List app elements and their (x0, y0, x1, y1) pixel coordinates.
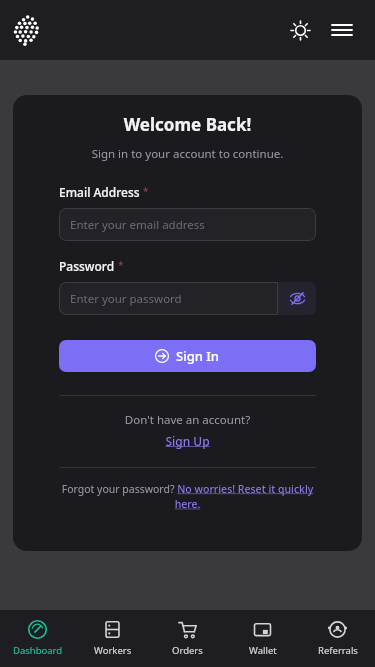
staticText: Wallet (249, 644, 277, 657)
button[interactable]: Menu (325, 13, 359, 47)
staticText: Orders (172, 644, 203, 657)
button[interactable]: Referrals (300, 610, 375, 667)
staticText: Email Address (59, 184, 140, 200)
staticText: Don't have an account? (59, 412, 316, 428)
button[interactable]: Enter your password (59, 282, 278, 315)
staticText: Dashboard (13, 644, 63, 657)
button[interactable]: Show password (278, 282, 316, 315)
button[interactable]: Orders (150, 610, 225, 667)
button[interactable]: Forgot your password? No worries! Reset … (59, 482, 316, 511)
staticText: Sign In (176, 347, 220, 365)
staticText: Referrals (318, 644, 358, 657)
staticText: Sign in to your account to continue. (59, 146, 316, 162)
button[interactable]: Dashboard (0, 610, 75, 667)
staticText: Workers (94, 644, 132, 657)
staticText: * (118, 258, 124, 272)
button[interactable]: Sign In (59, 340, 316, 372)
staticText: Enter your password (70, 291, 182, 307)
button[interactable]: Toggle light mode (283, 13, 317, 47)
button[interactable]: Wallet (225, 610, 300, 667)
button[interactable]: Enter your email address (59, 208, 316, 241)
staticText: Password (59, 258, 115, 274)
button[interactable]: Sign Up (165, 433, 210, 449)
staticText: * (143, 184, 149, 198)
staticText: Welcome Back! (59, 113, 316, 136)
staticText: Enter your email address (70, 217, 205, 233)
button[interactable]: Workers (75, 610, 150, 667)
